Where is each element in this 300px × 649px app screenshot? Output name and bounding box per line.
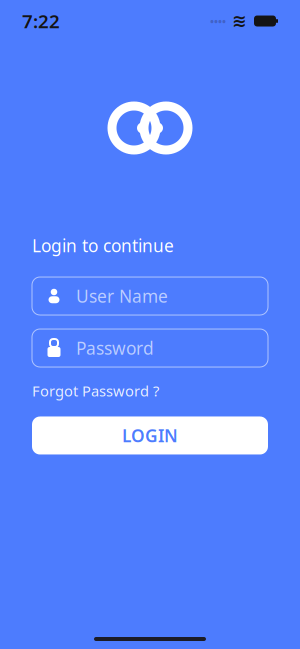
staticText: ≋ [232,11,247,31]
staticText: User Name [76,284,168,307]
staticText: 7:22 [22,9,60,33]
button[interactable]: Password [32,329,268,367]
staticText: Login to continue [32,234,174,257]
staticText: LOGIN [122,424,178,447]
staticText: •••• [210,14,226,28]
staticText: Password [76,336,154,359]
button[interactable]: User Name [32,277,268,315]
staticText: Forgot Password ? [32,381,159,400]
button[interactable]: Forgot Password ? [32,381,159,400]
button[interactable]: LOGIN [32,416,268,454]
